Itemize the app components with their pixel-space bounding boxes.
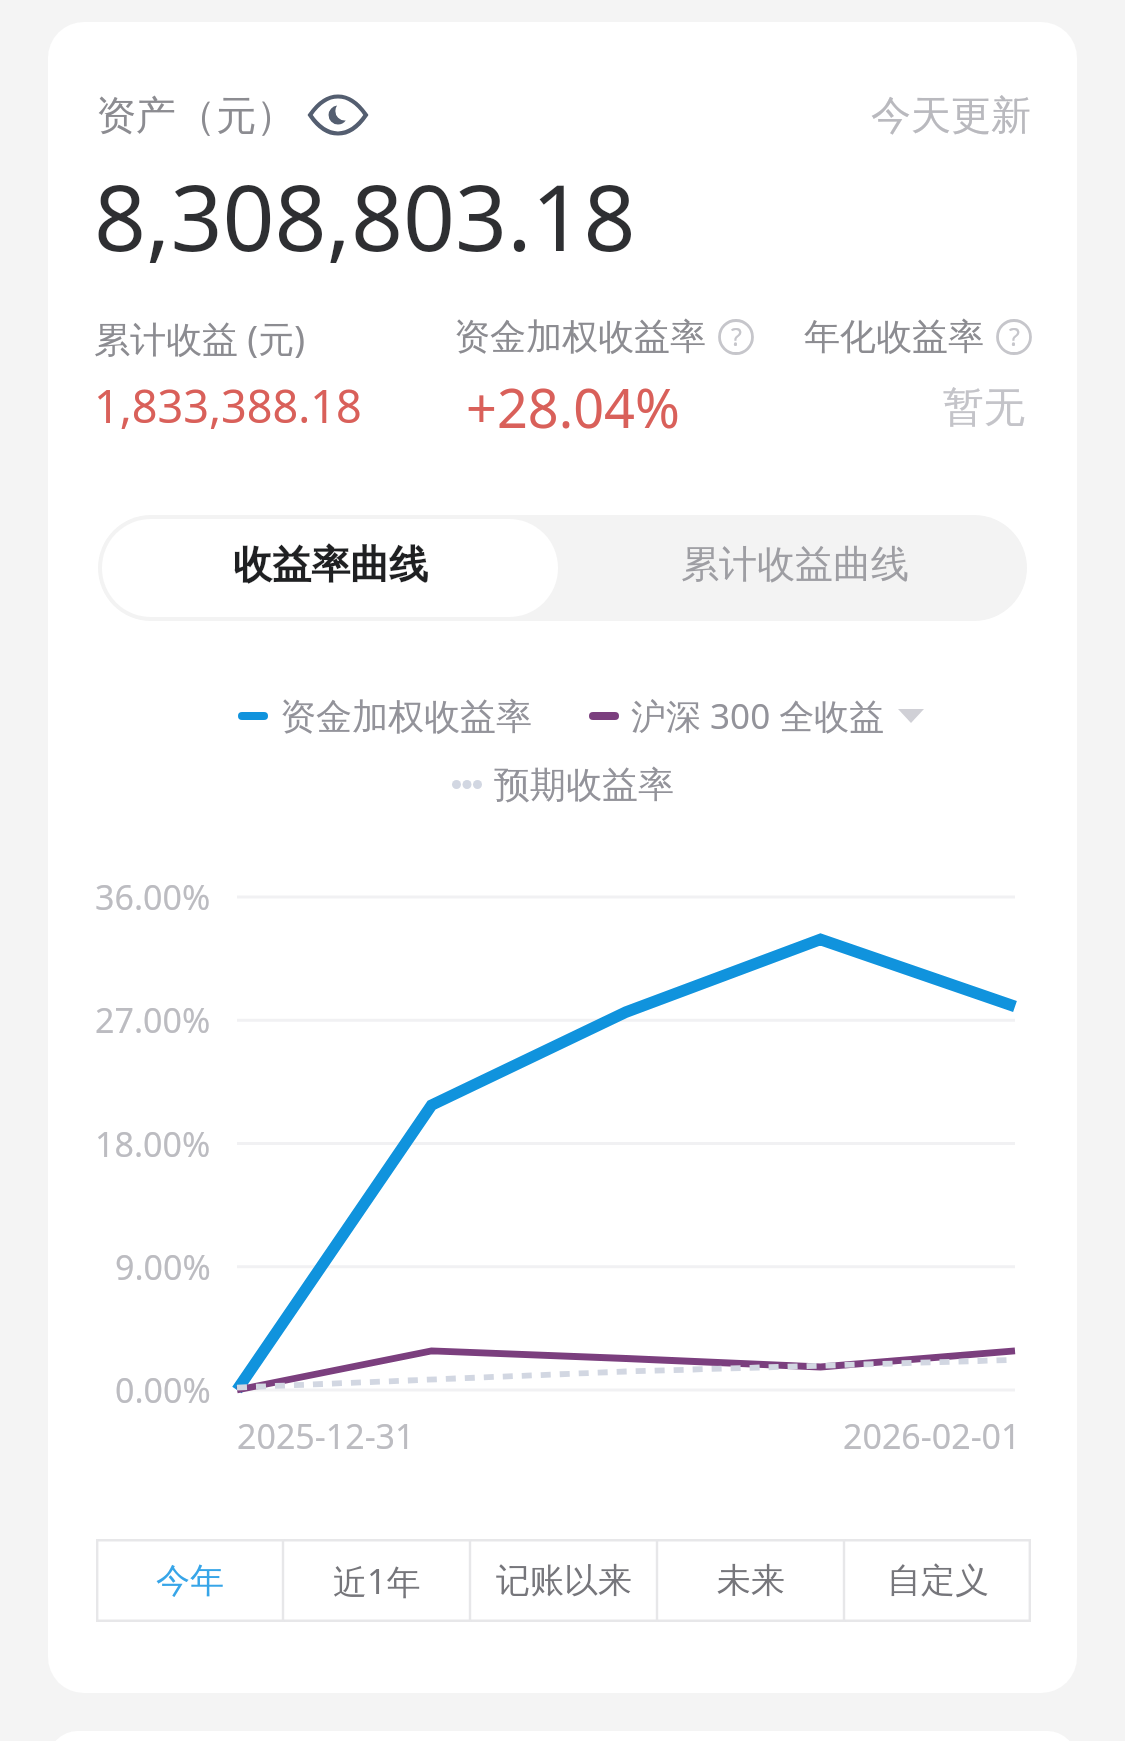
staticText: 沪深 300 全收益 (631, 692, 885, 740)
staticText: 暂无 (943, 382, 1025, 434)
button[interactable]: 收益率曲线 (102, 519, 558, 617)
staticText: 收益率曲线 (233, 540, 428, 589)
staticText: 1,833,388.18 (94, 375, 362, 436)
staticText: 0.00% (115, 1367, 211, 1413)
button[interactable]: Toggle asset visibility (306, 83, 370, 147)
staticText: 未来 (717, 1559, 785, 1602)
staticText: 累计收益曲线 (681, 540, 909, 588)
button[interactable]: Choose benchmark index (898, 709, 924, 723)
button[interactable]: 累计收益曲线 (562, 515, 1027, 621)
staticText: 今天更新 (871, 90, 1031, 140)
staticText: 今年 (156, 1559, 224, 1602)
staticText: 自定义 (887, 1559, 989, 1602)
staticText: 2026-02-01 (843, 1413, 1021, 1459)
staticText: 36.00% (95, 874, 211, 920)
staticText: 18.00% (95, 1121, 211, 1167)
button[interactable]: 未来 (657, 1539, 844, 1622)
button[interactable]: 自定义 (844, 1539, 1031, 1622)
staticText: 记账以来 (496, 1559, 632, 1602)
button[interactable]: 记账以来 (470, 1539, 657, 1622)
staticText: ? (1009, 319, 1020, 353)
button[interactable]: About annualised return (996, 319, 1032, 355)
staticText: 2025-12-31 (237, 1413, 415, 1459)
staticText: 9.00% (115, 1244, 211, 1290)
staticText: 资金加权收益率 (454, 314, 706, 359)
button[interactable]: 近1年 (283, 1539, 470, 1622)
staticText: 年化收益率 (804, 314, 984, 359)
staticText: 27.00% (95, 997, 211, 1043)
staticText: 8,308,803.18 (94, 154, 636, 278)
staticText: 累计收益 (元) (94, 314, 305, 363)
staticText: 近1年 (333, 1558, 421, 1604)
staticText: 资金加权收益率 (280, 694, 532, 739)
staticText: 资产（元） (96, 90, 296, 140)
staticText: 预期收益率 (494, 762, 674, 807)
button[interactable]: About money-weighted return (718, 319, 754, 355)
staticText: +28.04% (466, 370, 680, 444)
staticText: ? (731, 319, 742, 353)
button[interactable]: 今年 (96, 1539, 283, 1622)
